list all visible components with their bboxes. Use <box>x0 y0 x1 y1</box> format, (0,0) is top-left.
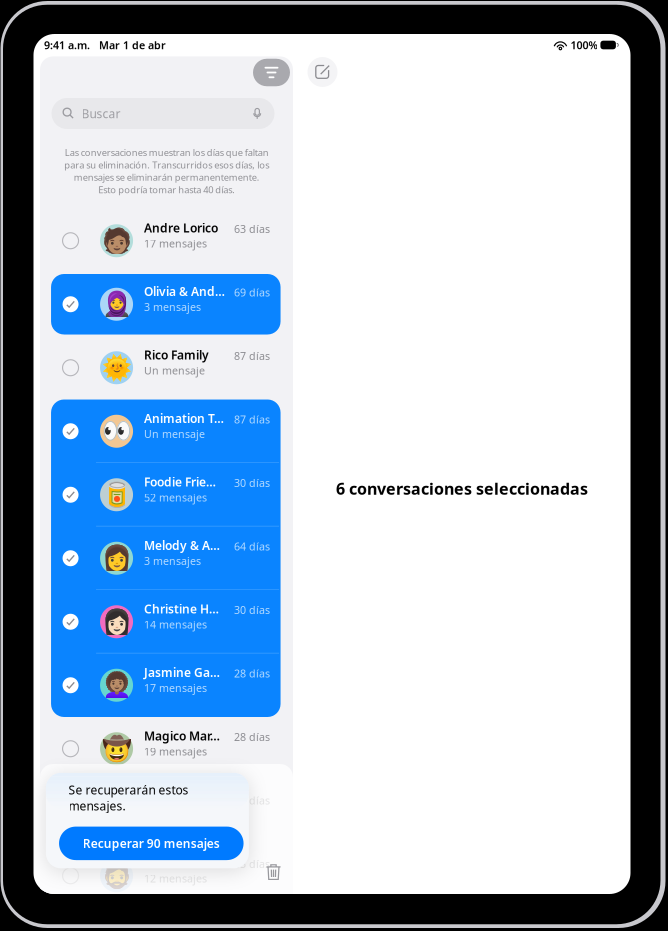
staticText: 9:41 a.m. <box>44 38 90 52</box>
staticText: 17 mensajes <box>144 681 207 695</box>
staticText: 3 mensajes <box>144 554 201 568</box>
staticText: Andre Lorico <box>144 220 218 236</box>
button[interactable]: Redactar <box>307 57 337 87</box>
staticText: 30 días <box>234 603 270 617</box>
button[interactable]: 🥫 <box>51 463 281 526</box>
staticText: Melody & A… <box>144 537 220 553</box>
staticText: 6 conversaciones seleccionadas <box>336 478 588 499</box>
staticText: Un mensaje <box>144 363 205 378</box>
staticText: 28 días <box>234 666 270 680</box>
staticText: 🤠 <box>102 735 132 762</box>
staticText: 👩🏻 <box>102 608 132 635</box>
staticText: 35 días <box>234 857 270 871</box>
button[interactable]: 👩🏻 <box>51 590 281 653</box>
staticText: 12 mensajes <box>144 871 207 886</box>
staticText: 63 días <box>234 222 270 236</box>
staticText: Mar 1 de abr <box>99 38 166 52</box>
staticText: Christine H… <box>144 601 219 617</box>
button[interactable]: 🌞 <box>51 336 281 399</box>
staticText: Rico Family <box>144 347 209 363</box>
button[interactable]: 🧕 <box>51 272 281 336</box>
button[interactable]: Eliminar <box>260 859 286 885</box>
staticText: 52 mensajes <box>144 490 207 505</box>
button[interactable]: 🧑🏽 <box>51 209 281 272</box>
staticText: 28 días <box>234 730 270 744</box>
staticText: 🥫 <box>102 481 132 508</box>
staticText: 30 días <box>234 476 270 490</box>
staticText: Buscar <box>81 105 120 121</box>
staticText: Las conversaciones muestran los días que… <box>64 146 269 196</box>
button[interactable]: 👩🏼 <box>51 780 281 844</box>
button[interactable]: 🤠 <box>51 717 281 780</box>
button[interactable]: 👩 <box>51 526 281 590</box>
staticText: 41 días <box>234 793 270 807</box>
button[interactable]: 🧔 <box>51 844 281 907</box>
staticText: 👀 <box>102 417 132 445</box>
staticText: 👩🏼 <box>102 798 132 826</box>
staticText: 🌞 <box>102 354 132 381</box>
staticText: 👩 <box>102 544 132 572</box>
staticText: 🧑🏽 <box>102 227 132 254</box>
staticText: 64 días <box>234 539 270 553</box>
staticText: Magico Mar… <box>144 728 220 744</box>
staticText: 19 mensajes <box>144 744 207 759</box>
staticText: 87 días <box>234 412 270 426</box>
button[interactable]: 👀 <box>51 399 281 463</box>
button[interactable]: Filtros <box>253 59 290 86</box>
staticText: 🧔 <box>102 862 132 889</box>
button[interactable]: 👩🏽‍🦱 <box>51 653 281 717</box>
staticText: 3 mensajes <box>144 300 201 314</box>
staticText: Recuperar 90 mensajes <box>83 835 220 851</box>
staticText: Jasmine Ga… <box>144 664 220 680</box>
staticText: 14 mensajes <box>144 617 207 632</box>
staticText: Foodie Frie… <box>144 474 216 490</box>
staticText: Se recuperarán estos mensajes. <box>69 782 189 814</box>
staticText: Un mensaje <box>144 427 205 441</box>
staticText: 69 días <box>234 285 270 299</box>
staticText: Animation T… <box>144 410 224 426</box>
button[interactable]: Buscar <box>51 98 274 129</box>
staticText: Sofia Reyes <box>144 791 211 807</box>
staticText: 87 días <box>234 349 270 363</box>
staticText: 🧕 <box>102 290 132 318</box>
staticText: 👩🏽‍🦱 <box>102 671 132 699</box>
staticText: 17 mensajes <box>144 236 207 251</box>
staticText: 100% <box>570 38 597 52</box>
button[interactable]: Recuperar 90 mensajes <box>59 827 244 860</box>
staticText: Tom Wilson <box>144 855 210 871</box>
staticText: Olivia & And… <box>144 283 225 299</box>
